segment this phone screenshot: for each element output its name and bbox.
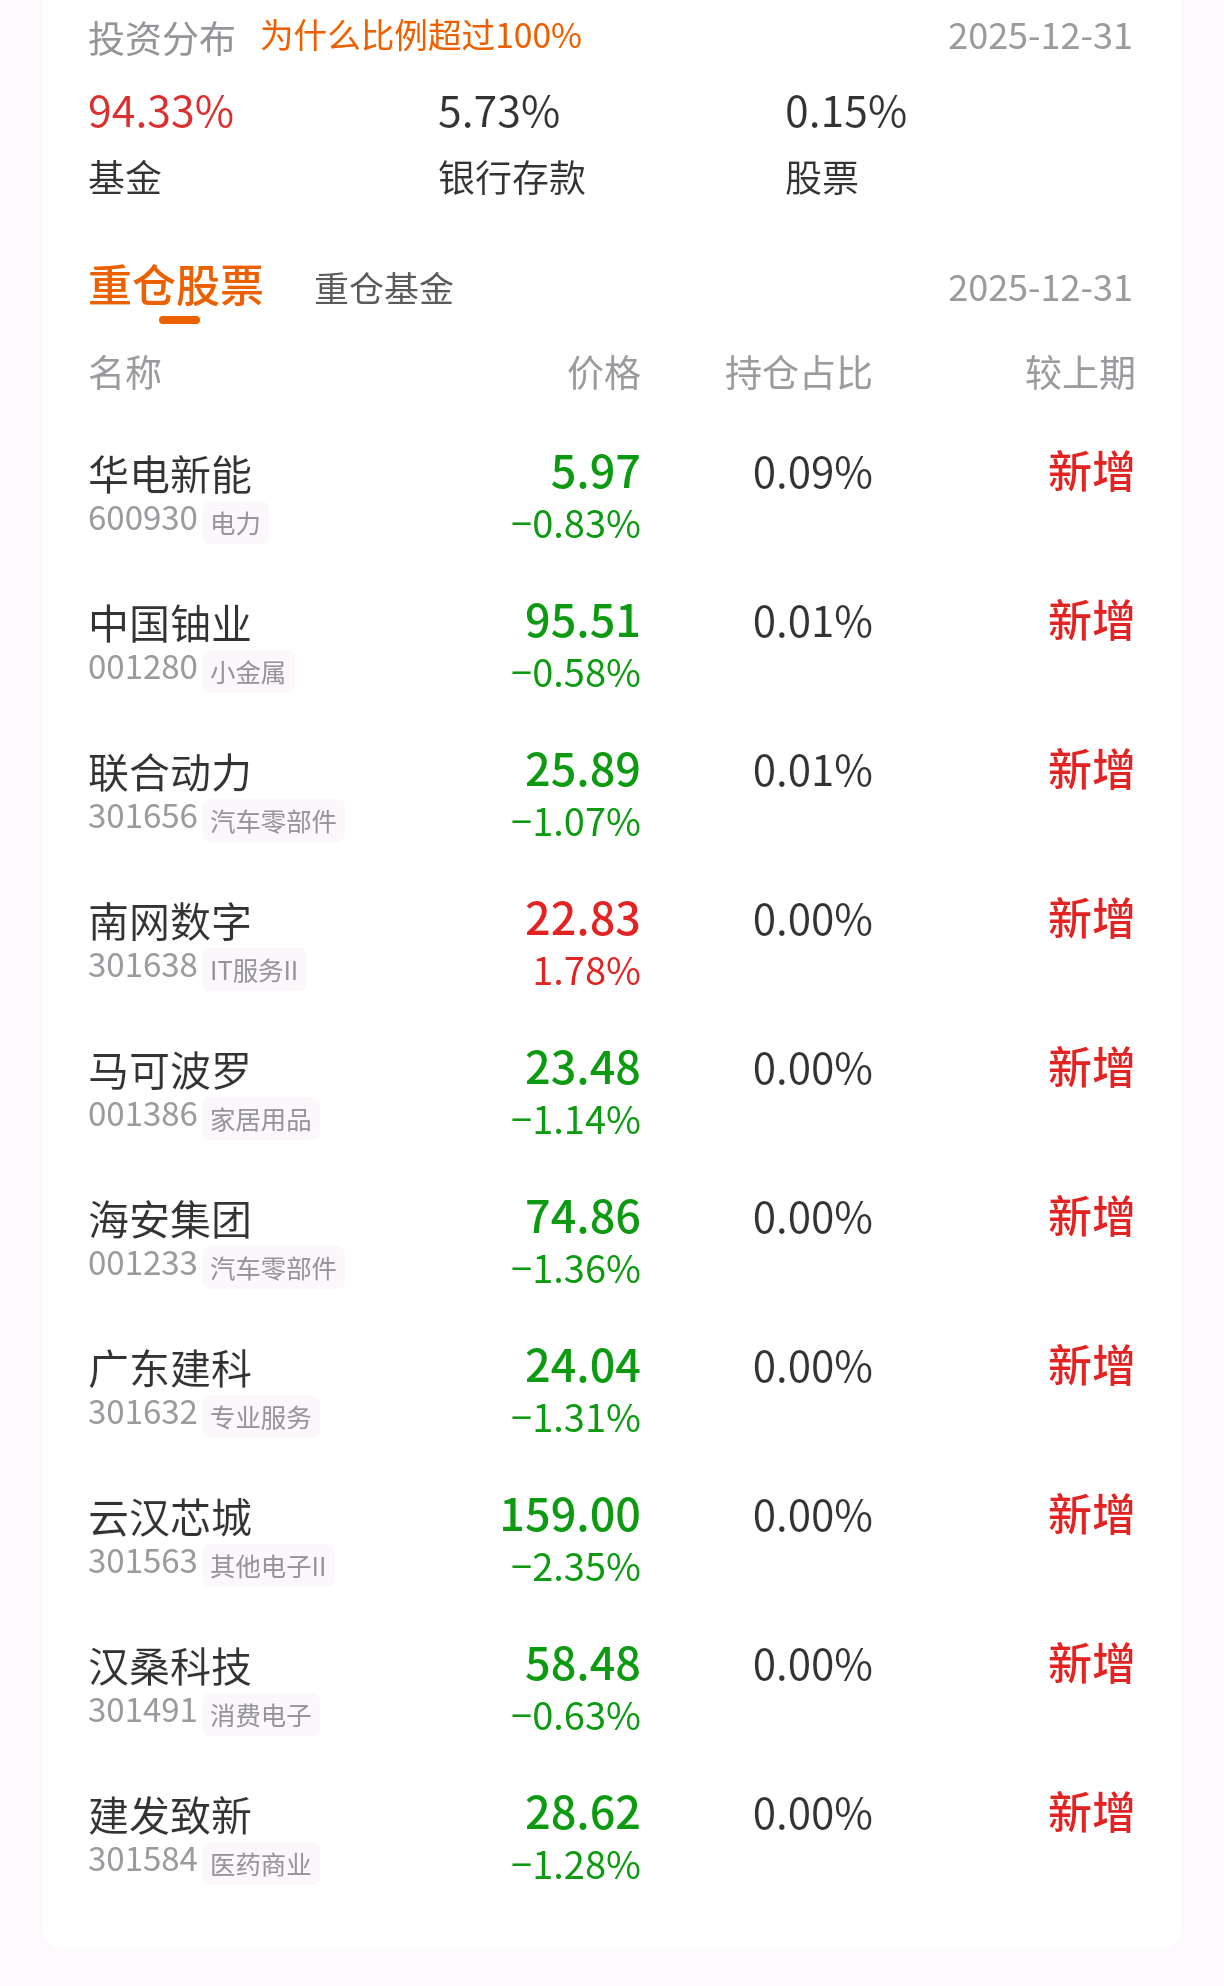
staticText: 1.78% xyxy=(341,941,641,996)
staticText: 华电新能 xyxy=(88,442,252,501)
staticText: 新增 xyxy=(836,1629,1136,1693)
staticText: −1.07% xyxy=(341,792,641,847)
staticText: 301656 xyxy=(88,790,198,838)
button[interactable]: 重仓基金 xyxy=(314,261,455,312)
staticText: 其他电子II xyxy=(210,1547,327,1584)
staticText: −1.14% xyxy=(341,1090,641,1145)
button[interactable]: 重仓股票 xyxy=(88,251,264,324)
staticText: 301563 xyxy=(88,1535,198,1583)
staticText: 5.97 xyxy=(341,436,641,501)
staticText: 001386 xyxy=(88,1088,198,1136)
staticText: −1.31% xyxy=(341,1388,641,1443)
staticText: 25.89 xyxy=(341,734,641,799)
staticText: 马可波罗 xyxy=(88,1038,252,1097)
button[interactable]: 海安集团 001233 xyxy=(43,1182,1181,1331)
staticText: 价格 xyxy=(341,344,641,398)
staticText: 较上期 xyxy=(836,344,1136,398)
staticText: 0.09% xyxy=(573,439,873,500)
button[interactable]: 中国铀业 001280 xyxy=(43,586,1181,735)
staticText: 联合动力 xyxy=(88,740,252,799)
staticText: 0.00% xyxy=(573,1184,873,1245)
staticText: 24.04 xyxy=(341,1330,641,1395)
staticText: 0.00% xyxy=(573,1333,873,1394)
staticText: 中国铀业 xyxy=(88,591,252,650)
button[interactable]: 广东建科 301632 xyxy=(43,1331,1181,1480)
staticText: 159.00 xyxy=(341,1479,641,1544)
staticText: −2.35% xyxy=(341,1537,641,1592)
staticText: 新增 xyxy=(836,884,1136,948)
staticText: 新增 xyxy=(836,735,1136,799)
staticText: 301632 xyxy=(88,1386,198,1434)
staticText: 0.15% xyxy=(785,77,908,139)
staticText: 为什么比例超过100% xyxy=(260,9,583,58)
staticText: 小金属 xyxy=(210,653,287,690)
staticText: 新增 xyxy=(836,1480,1136,1544)
staticText: 重仓基金 xyxy=(314,261,455,312)
staticText: 0.01% xyxy=(573,737,873,798)
staticText: −0.58% xyxy=(341,643,641,698)
staticText: 0.01% xyxy=(573,588,873,649)
staticText: 001233 xyxy=(88,1237,198,1285)
staticText: 0.00% xyxy=(573,1631,873,1692)
staticText: 投资分布 xyxy=(88,10,236,64)
staticText: 南网数字 xyxy=(88,889,252,948)
staticText: 22.83 xyxy=(341,883,641,948)
staticText: 海安集团 xyxy=(88,1187,252,1246)
staticText: 广东建科 xyxy=(88,1336,252,1395)
staticText: 新增 xyxy=(836,1033,1136,1097)
button[interactable]: 马可波罗 001386 xyxy=(43,1033,1181,1182)
staticText: 2025-12-31 xyxy=(833,7,1133,59)
staticText: 股票 xyxy=(785,149,859,203)
staticText: 云汉芯城 xyxy=(88,1485,252,1544)
staticText: 58.48 xyxy=(341,1628,641,1693)
button[interactable]: 联合动力 301656 xyxy=(43,735,1181,884)
button[interactable]: 南网数字 301638 xyxy=(43,884,1181,1033)
staticText: 基金 xyxy=(88,149,162,203)
staticText: 消费电子 xyxy=(210,1696,312,1733)
staticText: 0.00% xyxy=(573,1482,873,1543)
staticText: 新增 xyxy=(836,1182,1136,1246)
staticText: IT服务II xyxy=(210,951,299,988)
staticText: 新增 xyxy=(836,437,1136,501)
staticText: 0.00% xyxy=(573,1035,873,1096)
staticText: 0.00% xyxy=(573,886,873,947)
button[interactable]: 华电新能 600930 xyxy=(43,437,1181,586)
staticText: 0.00% xyxy=(573,1780,873,1841)
staticText: 汽车零部件 xyxy=(210,1249,337,1286)
staticText: 95.51 xyxy=(341,585,641,650)
staticText: −1.36% xyxy=(341,1239,641,1294)
staticText: 电力 xyxy=(210,504,261,541)
staticText: −0.83% xyxy=(341,494,641,549)
staticText: 专业服务 xyxy=(210,1398,312,1435)
staticText: 汽车零部件 xyxy=(210,802,337,839)
button[interactable]: 云汉芯城 301563 xyxy=(43,1480,1181,1629)
staticText: 新增 xyxy=(836,1331,1136,1395)
staticText: 301491 xyxy=(88,1684,198,1732)
staticText: 2025-12-31 xyxy=(833,259,1133,311)
staticText: 5.73% xyxy=(438,77,561,139)
staticText: 建发致新 xyxy=(88,1783,252,1842)
staticText: 名称 xyxy=(88,344,162,398)
staticText: 001280 xyxy=(88,641,198,689)
staticText: 持仓占比 xyxy=(573,344,873,398)
staticText: 医药商业 xyxy=(210,1845,312,1882)
staticText: 银行存款 xyxy=(438,149,586,203)
staticText: 汉桑科技 xyxy=(88,1634,252,1693)
staticText: 301638 xyxy=(88,939,198,987)
staticText: 600930 xyxy=(88,492,198,540)
staticText: 28.62 xyxy=(341,1777,641,1842)
button[interactable]: 建发致新 301584 xyxy=(43,1778,1181,1927)
staticText: 74.86 xyxy=(341,1181,641,1246)
staticText: 重仓股票 xyxy=(88,251,264,315)
staticText: 新增 xyxy=(836,586,1136,650)
button[interactable]: 为什么比例超过100% xyxy=(260,9,583,58)
staticText: −1.28% xyxy=(341,1835,641,1890)
staticText: 23.48 xyxy=(341,1032,641,1097)
staticText: 94.33% xyxy=(88,77,234,139)
staticText: 新增 xyxy=(836,1778,1136,1842)
staticText: 家居用品 xyxy=(210,1100,312,1137)
button[interactable]: 汉桑科技 301491 xyxy=(43,1629,1181,1778)
staticText: 301584 xyxy=(88,1833,198,1881)
staticText: −0.63% xyxy=(341,1686,641,1741)
